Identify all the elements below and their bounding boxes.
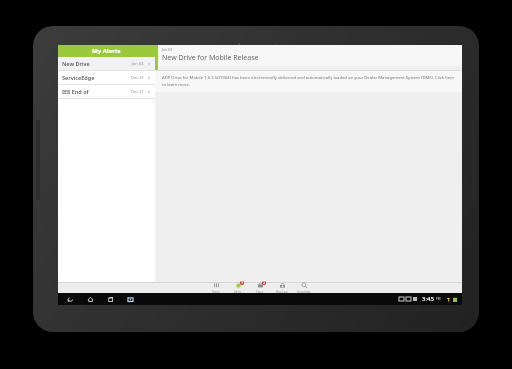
staticText: New Case <box>276 290 288 293</box>
button[interactable]: IE8 End of Support <box>58 85 155 99</box>
staticText: Jan 04 <box>162 47 172 52</box>
staticText: 3:45 <box>422 295 434 303</box>
staticText: Alerts <box>234 290 242 293</box>
button[interactable]: Screenshot <box>126 295 135 304</box>
staticText: ADP Drive for Mobile 1.6.3 (iOS904) has … <box>162 75 456 87</box>
button[interactable]: Home <box>205 282 227 293</box>
staticText: My Alerts <box>92 47 121 55</box>
staticText: Knowledge <box>297 290 311 293</box>
staticText: New Drive for Mobile Release <box>162 53 259 63</box>
button[interactable]: Alerts <box>227 282 249 293</box>
staticText: Cases <box>256 290 264 293</box>
button[interactable]: Cases <box>249 282 271 293</box>
staticText: New Drive for Mobile Release <box>62 60 97 67</box>
button[interactable]: New Drive for Mobile Release <box>58 57 155 71</box>
button[interactable]: Recents <box>106 295 115 304</box>
staticText: PM <box>436 297 441 301</box>
staticText: 1 <box>241 281 243 285</box>
button[interactable]: ServiceEdge and IOS Update <box>58 71 155 85</box>
staticText: Home <box>212 290 220 293</box>
button[interactable]: New Case <box>271 282 293 293</box>
staticText: ServiceEdge and IOS Update <box>62 74 96 81</box>
staticText: 2 <box>263 281 265 285</box>
button[interactable]: Knowledge <box>293 282 315 293</box>
staticText: Jan 04 <box>132 61 144 66</box>
button[interactable]: Back <box>66 295 75 304</box>
staticText: IE8 End of Support <box>62 88 96 95</box>
staticText: Dec 31 <box>131 75 144 80</box>
staticText: Dec 21 <box>131 89 144 94</box>
button[interactable]: Home <box>86 295 95 304</box>
